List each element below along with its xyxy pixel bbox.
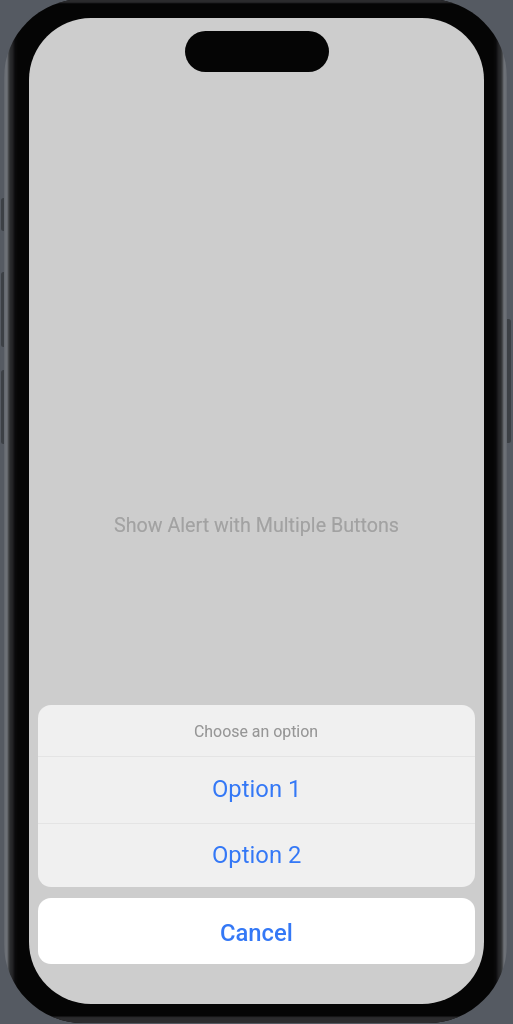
- button[interactable]: Option 1: [38, 757, 475, 823]
- button[interactable]: Cancel: [38, 898, 475, 964]
- button[interactable]: Option 2: [38, 824, 475, 887]
- staticText: Cancel: [220, 919, 293, 947]
- staticText: Show Alert with Multiple Buttons: [114, 514, 400, 537]
- other: Dynamic Island: [185, 31, 329, 72]
- staticText: Choose an option: [194, 722, 319, 741]
- staticText: Option 1: [212, 775, 302, 803]
- staticText: Option 2: [212, 841, 302, 869]
